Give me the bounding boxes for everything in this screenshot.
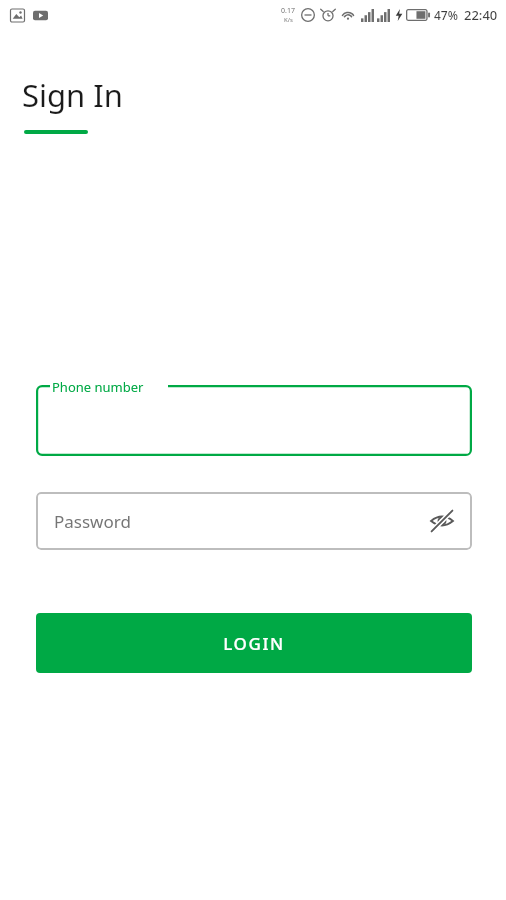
staticText: 47% [434, 7, 458, 23]
button[interactable]: Phone number [36, 385, 472, 456]
staticText: Sign In [22, 74, 123, 116]
button[interactable]: Show password [418, 497, 466, 545]
staticText: K/s [284, 16, 293, 24]
staticText: 0.17 [281, 6, 295, 16]
button[interactable]: Password [36, 492, 472, 550]
staticText: LOGIN [223, 632, 285, 655]
button[interactable]: LOGIN [36, 613, 472, 673]
staticText: 22:40 [464, 6, 498, 24]
staticText: Phone number [52, 378, 144, 396]
staticText: Password [54, 510, 131, 533]
